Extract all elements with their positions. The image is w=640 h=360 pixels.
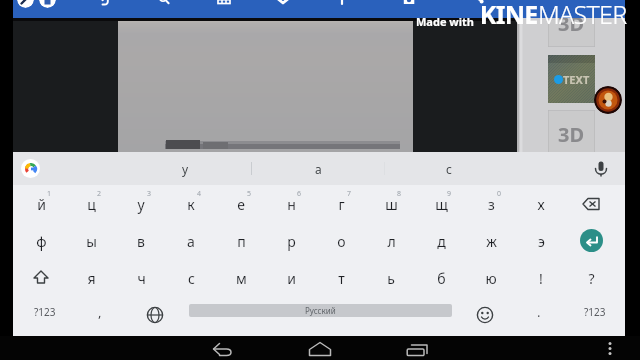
staticText: у xyxy=(182,161,189,177)
button[interactable]: ! xyxy=(516,259,566,296)
button[interactable]: р xyxy=(266,222,316,259)
button[interactable]: е xyxy=(216,185,266,222)
button[interactable]: Change language xyxy=(145,305,165,325)
staticText: ш xyxy=(385,195,398,214)
button[interactable]: Enter xyxy=(566,222,616,259)
button[interactable]: Zoom xyxy=(155,0,173,10)
button[interactable]: Add xyxy=(333,0,351,10)
staticText: п xyxy=(237,232,246,251)
button[interactable]: з xyxy=(466,185,516,222)
button[interactable]: ч xyxy=(116,259,166,296)
staticText: е xyxy=(237,195,245,214)
staticText: ? xyxy=(588,269,595,288)
staticText: с xyxy=(446,161,452,177)
button[interactable]: Text asset xyxy=(548,55,595,103)
button[interactable]: й xyxy=(16,185,66,222)
button[interactable]: Save xyxy=(400,0,418,10)
button[interactable]: ж xyxy=(466,222,516,259)
button[interactable]: я xyxy=(66,259,116,296)
staticText: и xyxy=(287,269,296,288)
button[interactable]: ш xyxy=(366,185,416,222)
staticText: 8 xyxy=(397,189,402,199)
button[interactable]: Backspace xyxy=(566,185,616,222)
button[interactable]: х xyxy=(516,185,566,222)
button[interactable]: ы xyxy=(66,222,116,259)
button[interactable]: Google search xyxy=(21,159,40,178)
button[interactable]: л xyxy=(366,222,416,259)
button[interactable]: More options xyxy=(600,338,620,358)
button[interactable]: ц xyxy=(66,185,116,222)
button[interactable]: м xyxy=(216,259,266,296)
staticText: MASTER xyxy=(538,0,627,31)
button[interactable]: ? xyxy=(566,259,616,296)
staticText: г xyxy=(338,195,345,214)
button[interactable]: Share xyxy=(469,0,487,10)
staticText: 3 xyxy=(147,189,152,199)
staticText: б xyxy=(437,269,446,288)
staticText: у xyxy=(137,195,145,214)
button[interactable]: Voice input xyxy=(591,159,610,178)
staticText: 7 xyxy=(347,189,352,199)
staticText: д xyxy=(437,232,446,251)
staticText: ?123 xyxy=(34,305,56,319)
staticText: х xyxy=(537,195,545,214)
staticText: 6 xyxy=(297,189,302,199)
button[interactable]: п xyxy=(216,222,266,259)
staticText: KINE xyxy=(474,0,538,31)
button[interactable]: Edit xyxy=(17,0,34,8)
button[interactable]: у xyxy=(116,185,166,222)
button[interactable]: Delete xyxy=(39,0,56,8)
button[interactable]: ф xyxy=(16,222,66,259)
button[interactable]: ь xyxy=(366,259,416,296)
button[interactable]: в xyxy=(116,222,166,259)
button[interactable]: щ xyxy=(416,185,466,222)
button[interactable]: г xyxy=(316,185,366,222)
button[interactable]: Space xyxy=(189,304,452,317)
button[interactable]: Recents xyxy=(403,338,431,358)
button[interactable]: , xyxy=(78,300,122,324)
staticText: ю xyxy=(485,269,497,288)
button[interactable]: Home xyxy=(306,338,334,358)
button[interactable]: Back xyxy=(209,338,237,358)
button[interactable]: э xyxy=(516,222,566,259)
button[interactable]: ?123 xyxy=(23,300,67,324)
staticText: л xyxy=(387,232,396,251)
button[interactable]: д xyxy=(416,222,466,259)
button[interactable]: с xyxy=(419,155,479,182)
button[interactable]: Emoji xyxy=(475,305,495,325)
staticText: э xyxy=(538,232,545,251)
button[interactable]: а xyxy=(166,222,216,259)
button[interactable]: ю xyxy=(466,259,516,296)
staticText: т xyxy=(338,269,345,288)
button[interactable]: Grid xyxy=(215,0,233,10)
button[interactable]: 3D asset xyxy=(548,18,595,47)
button[interactable]: ?123 xyxy=(573,300,617,324)
staticText: з xyxy=(488,195,495,214)
button[interactable]: KineMaster watermark xyxy=(594,86,622,114)
button[interactable]: и xyxy=(266,259,316,296)
button[interactable]: у xyxy=(155,155,215,182)
button[interactable]: Layers xyxy=(274,0,292,10)
staticText: Made with xyxy=(416,14,474,29)
button[interactable]: т xyxy=(316,259,366,296)
button[interactable]: к xyxy=(166,185,216,222)
button[interactable]: 3D asset xyxy=(548,110,595,152)
staticText: 3D xyxy=(558,121,585,148)
button[interactable]: а xyxy=(288,155,348,182)
staticText: ч xyxy=(137,269,146,288)
staticText: ы xyxy=(86,232,97,251)
button[interactable]: Shift xyxy=(16,259,66,296)
button[interactable]: б xyxy=(416,259,466,296)
staticText: в xyxy=(137,232,145,251)
button[interactable]: о xyxy=(316,222,366,259)
button[interactable]: Undo xyxy=(94,0,112,10)
button[interactable]: н xyxy=(266,185,316,222)
staticText: м xyxy=(236,269,247,288)
button[interactable]: с xyxy=(166,259,216,296)
staticText: Русский xyxy=(305,305,336,316)
staticText: 2 xyxy=(97,189,102,199)
staticText: р xyxy=(287,232,296,251)
button[interactable]: . xyxy=(517,300,561,324)
staticText: ?123 xyxy=(584,305,606,319)
staticText: а xyxy=(187,232,195,251)
